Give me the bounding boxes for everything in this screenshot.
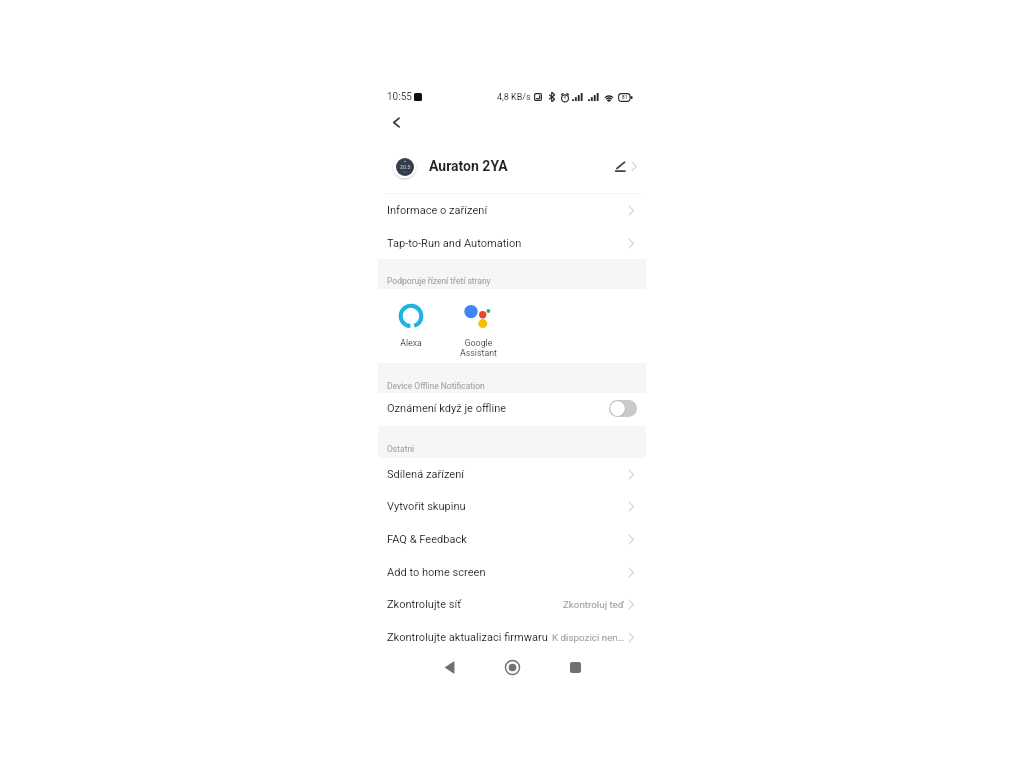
button[interactable]: Back	[437, 655, 461, 679]
staticText: Google Assistant	[460, 338, 497, 358]
staticText: Oznámení když je offline	[387, 402, 507, 415]
staticText: Zkontroluj teď	[563, 599, 625, 610]
staticText: Zkontrolujte síť	[387, 598, 462, 611]
staticText: 20.5	[400, 164, 411, 170]
staticText: Add to home screen	[387, 566, 486, 579]
staticText: FAQ & Feedback	[387, 533, 467, 546]
staticText: K dispozici nen…	[552, 632, 625, 643]
button[interactable]: Zkontrolujte aktualizaci firmwaru	[378, 621, 646, 654]
button[interactable]: Rename device	[613, 158, 629, 174]
staticText: Informace o zařízení	[387, 204, 488, 217]
button[interactable]: 20.5	[378, 142, 646, 190]
staticText: Device Offline Notification	[387, 381, 485, 391]
button[interactable]: Vytvořit skupinu	[378, 490, 646, 523]
button[interactable]: FAQ & Feedback	[378, 523, 646, 556]
button[interactable]: Home	[500, 655, 524, 679]
button[interactable]: Add to home screen	[378, 556, 646, 588]
staticText: Auraton 2YA	[429, 158, 508, 174]
button[interactable]: Google Assistant	[454, 303, 502, 358]
staticText: Podporuje řízení třetí strany	[387, 276, 491, 286]
button[interactable]: Notify when offline	[609, 400, 637, 417]
staticText: 10:55	[387, 91, 412, 103]
staticText: 4,8 KB/s	[497, 92, 531, 103]
staticText: Tap-to-Run and Automation	[387, 237, 522, 250]
button[interactable]: Back	[385, 111, 407, 133]
button[interactable]: Recent apps	[563, 655, 587, 679]
staticText: Alexa	[400, 338, 422, 348]
staticText: 81	[622, 95, 628, 100]
button[interactable]: Sdílená zařízení	[378, 458, 646, 490]
staticText: Zkontrolujte aktualizaci firmwaru	[387, 631, 548, 644]
button[interactable]: Alexa	[387, 303, 435, 348]
button[interactable]: Tap-to-Run and Automation	[378, 227, 646, 259]
staticText: Ostatni	[387, 444, 415, 454]
button[interactable]: Informace o zařízení	[378, 194, 646, 227]
button[interactable]: Zkontrolujte síť	[378, 588, 646, 621]
staticText: Sdílená zařízení	[387, 468, 464, 481]
staticText: Vytvořit skupinu	[387, 500, 466, 513]
